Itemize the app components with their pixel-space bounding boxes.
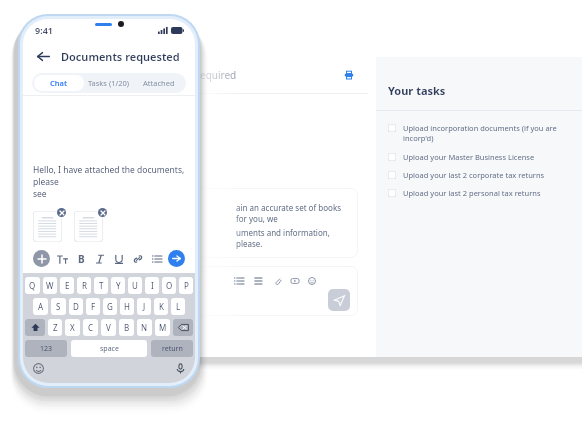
button[interactable]: R: [77, 277, 91, 294]
staticText: W: [46, 280, 54, 291]
staticText: C: [88, 322, 94, 333]
button[interactable]: Y: [111, 277, 125, 294]
button[interactable]: C: [83, 319, 98, 336]
button[interactable]: Remove attachment: [98, 208, 107, 217]
staticText: Upload your Master Business License: [403, 152, 535, 162]
button[interactable]: Backspace: [173, 319, 193, 336]
staticText: O: [166, 280, 173, 291]
button[interactable]: M: [155, 319, 170, 336]
button[interactable]: Chat: [34, 75, 84, 91]
button[interactable]: N: [137, 319, 152, 336]
staticText: Documents requested: [61, 49, 180, 64]
staticText: Tasks (1/20): [88, 78, 130, 88]
button[interactable]: Dictate: [173, 361, 187, 375]
button[interactable]: Send: [168, 250, 185, 267]
staticText: Upload your last 2 corporate tax returns: [403, 170, 545, 180]
button[interactable]: Tasks (1/20): [84, 75, 134, 91]
staticText: P: [184, 280, 189, 291]
staticText: space: [100, 344, 119, 354]
staticText: 123: [40, 344, 53, 354]
staticText: Upload incorporation documents (if you a…: [403, 123, 557, 143]
staticText: Upload your last 2 personal tax returns: [403, 188, 541, 198]
button[interactable]: Send: [328, 289, 350, 311]
button[interactable]: U: [128, 277, 142, 294]
staticText: U: [132, 280, 138, 291]
button[interactable]: Q: [25, 277, 40, 294]
button[interactable]: Attached: [134, 75, 184, 91]
button[interactable]: Link: [130, 251, 146, 267]
staticText: H: [124, 301, 130, 312]
staticText: L: [176, 301, 181, 312]
staticText: V: [106, 322, 111, 333]
button[interactable]: return: [151, 340, 193, 357]
button[interactable]: E: [60, 277, 74, 294]
staticText: ain an accurate set of books for you, we: [236, 202, 352, 224]
staticText: F: [91, 301, 96, 312]
staticText: Y: [116, 280, 121, 291]
staticText: N: [141, 322, 148, 333]
button[interactable]: ain an accurate set of books for you, we: [196, 188, 358, 258]
button[interactable]: Italic: [92, 251, 108, 267]
button[interactable]: O: [162, 277, 176, 294]
staticText: return: [162, 344, 183, 354]
button[interactable]: 123: [25, 340, 67, 357]
button[interactable]: K: [154, 298, 168, 315]
staticText: Chat: [50, 78, 68, 88]
button[interactable]: T: [94, 277, 108, 294]
button[interactable]: W: [43, 277, 57, 294]
button[interactable]: [33, 211, 62, 242]
staticText: D: [73, 301, 79, 312]
button[interactable]: Add: [33, 250, 50, 267]
button[interactable]: List: [149, 251, 165, 267]
button[interactable]: space: [71, 340, 147, 357]
button[interactable]: Print: [340, 66, 358, 84]
button[interactable]: B: [119, 319, 134, 336]
staticText: R: [82, 280, 87, 291]
button[interactable]: Z: [48, 319, 62, 336]
button[interactable]: Upload incorporation documents (if you a…: [388, 123, 576, 143]
staticText: K: [159, 301, 164, 312]
staticText: M: [159, 322, 167, 333]
staticText: Z: [53, 322, 58, 333]
button[interactable]: Emoji: [31, 361, 45, 375]
staticText: Attached: [143, 78, 175, 88]
button[interactable]: L: [171, 298, 185, 315]
staticText: B: [124, 322, 130, 333]
staticText: X: [70, 322, 75, 333]
button[interactable]: P: [179, 277, 193, 294]
staticText: uments and information, please.: [236, 227, 352, 249]
staticText: J: [143, 301, 146, 312]
button[interactable]: I: [145, 277, 159, 294]
button[interactable]: Back: [33, 46, 53, 66]
button[interactable]: F: [86, 298, 100, 315]
staticText: T: [99, 280, 104, 291]
button[interactable]: A: [33, 298, 48, 315]
button[interactable]: G: [103, 298, 117, 315]
staticText: equired: [200, 68, 237, 82]
button[interactable]: D: [69, 298, 83, 315]
button[interactable]: Remove attachment: [57, 208, 66, 217]
button[interactable]: J: [137, 298, 151, 315]
button[interactable]: Send: [196, 266, 358, 316]
staticText: E: [65, 280, 70, 291]
button[interactable]: Bold: [73, 251, 89, 267]
button[interactable]: H: [120, 298, 134, 315]
button[interactable]: V: [101, 319, 116, 336]
button[interactable]: [74, 211, 103, 242]
button[interactable]: Upload your last 2 personal tax returns: [388, 188, 576, 198]
staticText: A: [38, 301, 44, 312]
button[interactable]: Upload your Master Business License: [388, 152, 576, 162]
button[interactable]: Tt: [54, 251, 70, 267]
button[interactable]: X: [65, 319, 80, 336]
button[interactable]: Shift: [25, 319, 45, 336]
button[interactable]: S: [51, 298, 66, 315]
staticText: G: [107, 301, 113, 312]
staticText: Hello, I have attached the documents, pl…: [33, 164, 185, 200]
staticText: Q: [29, 280, 36, 291]
staticText: B: [78, 252, 85, 266]
staticText: Your tasks: [388, 83, 446, 98]
staticText: S: [56, 301, 61, 312]
staticText: I: [151, 280, 154, 291]
button[interactable]: Upload your last 2 corporate tax returns: [388, 170, 576, 180]
button[interactable]: Underline: [111, 251, 127, 267]
